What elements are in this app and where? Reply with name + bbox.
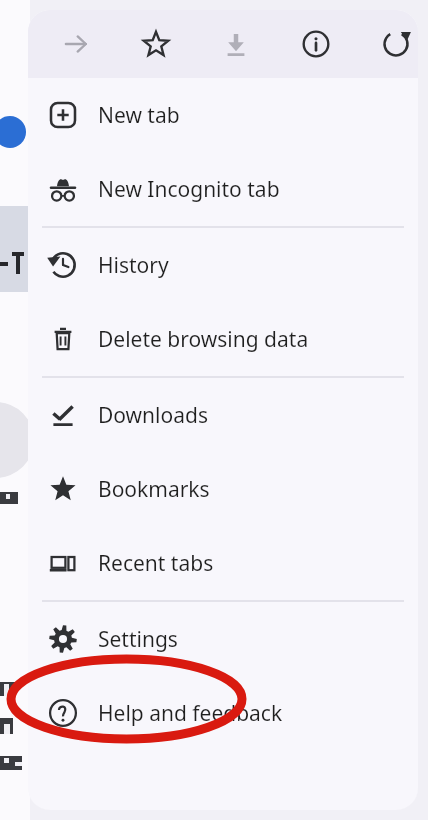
button[interactable]: Page info (300, 28, 332, 60)
staticText: Downloads (98, 401, 208, 430)
button[interactable]: Downloads (28, 378, 418, 452)
button[interactable]: Forward (60, 28, 92, 60)
button[interactable]: New tab (28, 78, 418, 152)
staticText: Delete browsing data (98, 325, 309, 354)
button[interactable]: Reload (380, 28, 412, 60)
staticText: New tab (98, 101, 180, 130)
button[interactable]: Bookmarks (28, 452, 418, 526)
staticText: New Incognito tab (98, 175, 280, 204)
staticText: Settings (98, 625, 178, 654)
button[interactable]: New Incognito tab (28, 152, 418, 226)
button[interactable]: Download page (220, 28, 252, 60)
staticText: Bookmarks (98, 475, 210, 504)
staticText: History (98, 251, 169, 280)
staticText: Recent tabs (98, 549, 214, 578)
button[interactable]: Help and feedback (28, 676, 418, 750)
button[interactable]: Settings (28, 602, 418, 676)
button[interactable]: Recent tabs (28, 526, 418, 600)
button[interactable]: History (28, 228, 418, 302)
button[interactable]: Delete browsing data (28, 302, 418, 376)
button[interactable]: Bookmark (140, 28, 172, 60)
staticText: Help and feedback (98, 699, 283, 728)
